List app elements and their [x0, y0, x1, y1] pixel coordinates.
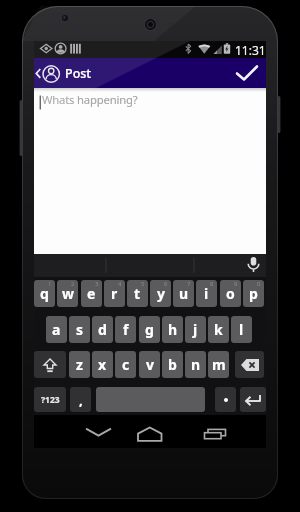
button[interactable]: l [231, 316, 252, 343]
button[interactable]: j [185, 316, 206, 343]
button[interactable] [34, 351, 66, 378]
button[interactable]: Post [34, 58, 130, 88]
staticText: 7 [187, 280, 191, 288]
staticText: 9 [234, 280, 238, 288]
button[interactable]: w [57, 280, 78, 307]
staticText: p [249, 284, 258, 303]
button[interactable] [215, 387, 236, 412]
staticText: g [145, 320, 154, 339]
button[interactable]: r [104, 280, 125, 307]
button[interactable]: p [243, 280, 264, 307]
staticText: 5 [141, 280, 145, 288]
staticText: w [62, 284, 74, 303]
button[interactable]: d [92, 316, 113, 343]
staticText: z [76, 355, 83, 374]
button[interactable] [240, 387, 266, 412]
button[interactable]: u [173, 280, 194, 307]
button[interactable]: g [139, 316, 160, 343]
button[interactable]: c [115, 351, 136, 378]
staticText: 3 [95, 280, 99, 288]
staticText: i [204, 284, 209, 303]
button[interactable] [75, 415, 123, 448]
staticText: 4 [118, 280, 122, 288]
staticText: e [87, 284, 96, 303]
staticText: s [76, 320, 84, 339]
button[interactable] [228, 58, 266, 88]
staticText: c [122, 355, 130, 374]
staticText: a [52, 320, 61, 339]
staticText: , [79, 391, 83, 409]
staticText: 8 [210, 280, 214, 288]
staticText: h [168, 320, 178, 339]
button[interactable]: z [69, 351, 90, 378]
button[interactable]: n [185, 351, 206, 378]
staticText: d [98, 320, 107, 339]
staticText: v [146, 355, 154, 374]
staticText: l [239, 320, 244, 339]
button[interactable]: ?123 [34, 387, 66, 412]
button[interactable]: q [34, 280, 55, 307]
staticText: x [98, 355, 107, 374]
button[interactable]: v [139, 351, 160, 378]
staticText: f [123, 320, 129, 339]
button[interactable]: x [92, 351, 113, 378]
staticText: ?123 [41, 394, 60, 406]
staticText: 0 [257, 280, 261, 288]
staticText: Whats happening? [42, 92, 138, 107]
staticText: t [134, 284, 141, 303]
button[interactable]: , [70, 387, 91, 412]
staticText: m [212, 355, 226, 374]
staticText: u [179, 284, 189, 303]
staticText: q [40, 284, 49, 303]
staticText: 6 [164, 280, 168, 288]
button[interactable]: i [196, 280, 217, 307]
staticText: o [226, 284, 235, 303]
button[interactable] [126, 415, 174, 448]
button[interactable]: h [162, 316, 183, 343]
button[interactable] [235, 351, 264, 378]
button[interactable]: k [208, 316, 229, 343]
button[interactable] [96, 387, 205, 412]
staticText: y [157, 284, 165, 303]
staticText: k [214, 320, 223, 339]
button[interactable] [191, 415, 239, 448]
button[interactable]: b [162, 351, 183, 378]
button[interactable]: a [46, 316, 67, 343]
staticText: 1 [48, 280, 52, 288]
staticText: 2 [71, 280, 75, 288]
button[interactable] [240, 254, 266, 277]
staticText: j [193, 320, 198, 339]
button[interactable]: e [81, 280, 102, 307]
button[interactable]: t [127, 280, 148, 307]
staticText: Post [65, 65, 92, 82]
button[interactable]: o [220, 280, 241, 307]
staticText: n [191, 355, 201, 374]
button[interactable]: s [69, 316, 90, 343]
staticText: b [168, 355, 177, 374]
button[interactable]: m [208, 351, 229, 378]
staticText: 11:31 [235, 42, 266, 58]
button[interactable]: y [150, 280, 171, 307]
staticText: r [111, 284, 118, 303]
button[interactable]: f [115, 316, 136, 343]
